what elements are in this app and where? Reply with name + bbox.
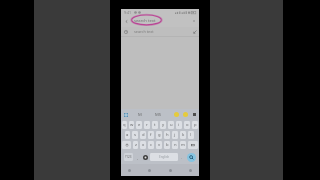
button[interactable]: Clear <box>191 18 197 24</box>
button[interactable]: n <box>172 141 178 149</box>
button[interactable]: p <box>192 121 198 129</box>
staticText: z <box>135 142 137 148</box>
staticText: MS <box>155 112 162 118</box>
button[interactable]: Back <box>123 18 129 24</box>
button[interactable]: c <box>148 141 154 149</box>
staticText: j <box>174 132 176 138</box>
staticText: x <box>142 142 145 148</box>
button[interactable]: Home <box>146 167 153 174</box>
button[interactable]: v <box>156 141 162 149</box>
button[interactable]: a <box>125 131 130 139</box>
staticText: s <box>134 132 137 138</box>
button[interactable]: Emoji suggestion <box>174 112 179 117</box>
button[interactable]: h <box>164 131 170 139</box>
staticText: m <box>181 142 185 148</box>
button[interactable]: Emoji <box>142 153 148 161</box>
button[interactable]: Shift <box>122 141 131 149</box>
button[interactable]: Space <box>150 153 178 161</box>
button[interactable]: ?123 <box>124 153 133 161</box>
staticText: b <box>166 142 169 148</box>
button[interactable]: g <box>156 131 162 139</box>
button[interactable]: w <box>129 121 134 129</box>
button[interactable]: e <box>136 121 142 129</box>
button[interactable]: Emoji suggestion 2 <box>183 112 188 117</box>
staticText: . <box>181 155 183 160</box>
button[interactable]: t <box>152 121 158 129</box>
staticText: a <box>126 132 129 138</box>
staticText: g <box>158 132 161 138</box>
staticText: v <box>158 142 161 148</box>
button[interactable]: b <box>164 141 170 149</box>
button[interactable]: Search <box>187 153 196 162</box>
button[interactable]: search text <box>123 27 197 36</box>
staticText: q <box>123 122 126 128</box>
button[interactable]: More <box>187 167 194 174</box>
staticText: M <box>138 112 142 118</box>
button[interactable]: r <box>144 121 150 129</box>
staticText: c <box>150 142 153 148</box>
staticText: o <box>186 122 189 128</box>
button[interactable]: f <box>148 131 154 139</box>
button[interactable]: y <box>160 121 166 129</box>
button[interactable]: More suggestions <box>192 112 197 117</box>
staticText: y <box>162 122 165 128</box>
staticText: search text <box>134 18 156 24</box>
staticText: 9:41 <box>124 10 132 15</box>
staticText: d <box>142 132 145 138</box>
staticText: l <box>190 132 192 138</box>
button[interactable]: Back <box>126 167 133 174</box>
button[interactable]: z <box>133 141 138 149</box>
staticText: e <box>138 122 141 128</box>
button[interactable]: i <box>176 121 182 129</box>
button[interactable]: j <box>172 131 178 139</box>
staticText: search text <box>134 29 154 34</box>
button[interactable]: Keyboard options <box>123 112 129 118</box>
button[interactable]: l <box>188 131 194 139</box>
staticText: , <box>137 155 139 160</box>
button[interactable]: Comma <box>135 153 140 161</box>
staticText: ?123 <box>125 155 132 159</box>
staticText: h <box>166 132 169 138</box>
staticText: r <box>146 122 148 128</box>
button[interactable]: s <box>132 131 138 139</box>
button[interactable]: m <box>180 141 186 149</box>
staticText: English <box>159 155 170 159</box>
staticText: w <box>130 122 134 128</box>
staticText: n <box>174 142 177 148</box>
staticText: i <box>178 122 180 128</box>
button[interactable]: x <box>140 141 146 149</box>
button[interactable]: Recents <box>167 167 174 174</box>
staticText: p <box>194 122 197 128</box>
button[interactable]: u <box>168 121 174 129</box>
staticText: f <box>150 132 152 138</box>
button[interactable]: k <box>180 131 186 139</box>
button[interactable]: o <box>184 121 190 129</box>
staticText: k <box>182 132 185 138</box>
button[interactable]: Delete <box>188 141 198 149</box>
button[interactable]: q <box>122 121 127 129</box>
staticText: t <box>154 122 156 128</box>
button[interactable]: d <box>140 131 146 139</box>
staticText: u <box>170 122 173 128</box>
